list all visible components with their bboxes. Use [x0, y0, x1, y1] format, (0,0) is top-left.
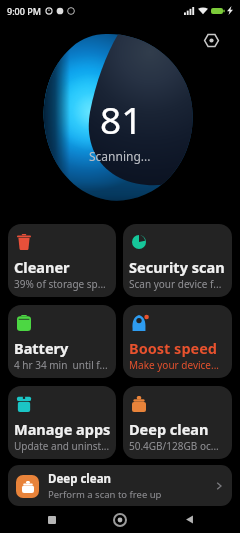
staticText: Boost speed: [129, 338, 218, 358]
staticText: 81: [100, 94, 143, 144]
button[interactable]: Cleaner: [8, 224, 116, 297]
staticText: 9:00 PM: [7, 5, 41, 17]
button[interactable]: Home: [103, 506, 137, 533]
staticText: Battery: [14, 338, 69, 358]
button[interactable]: Deep clean: [8, 465, 232, 506]
button[interactable]: Back: [172, 506, 206, 533]
button[interactable]: Recents: [35, 506, 69, 533]
button[interactable]: Battery: [8, 305, 116, 378]
staticText: 39% of storage sp...: [14, 277, 106, 291]
staticText: Update and uninst...: [14, 439, 110, 453]
button[interactable]: Manage apps: [8, 386, 116, 459]
staticText: Cleaner: [14, 257, 70, 277]
staticText: Scan your device f...: [129, 277, 222, 291]
button[interactable]: Deep clean: [123, 386, 232, 459]
staticText: Make your device...: [129, 358, 220, 372]
button[interactable]: Boost speed: [123, 305, 232, 378]
staticText: Manage apps: [14, 419, 111, 439]
staticText: Perform a scan to free up: [48, 488, 162, 501]
staticText: Scanning...: [89, 148, 151, 164]
button[interactable]: Settings: [200, 29, 222, 51]
staticText: 4 hr 34 min until f...: [14, 358, 108, 372]
staticText: Security scan: [129, 257, 225, 277]
staticText: Deep clean: [48, 471, 111, 487]
staticText: 50.4GB/128GB oc...: [129, 439, 219, 453]
button[interactable]: Security scan: [123, 224, 232, 297]
staticText: Deep clean: [129, 419, 209, 439]
